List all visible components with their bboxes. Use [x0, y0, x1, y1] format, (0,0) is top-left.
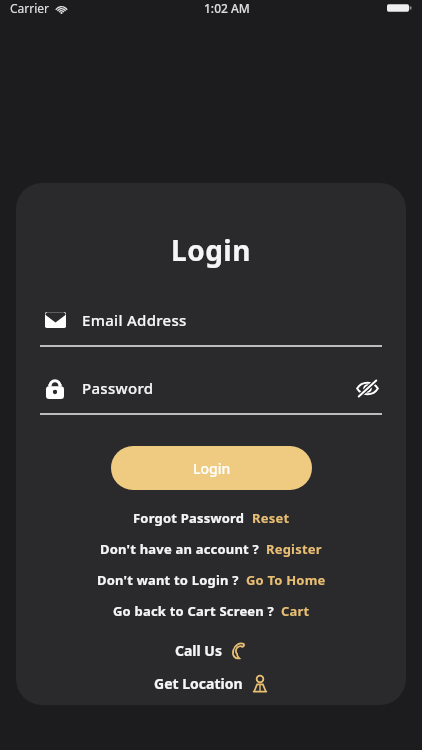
- staticText: 1:02 AM: [204, 0, 250, 16]
- button[interactable]: Password: [40, 371, 382, 415]
- staticText: Go To Home: [246, 571, 326, 589]
- button[interactable]: Go back to Cart Screen ?: [107, 600, 316, 622]
- staticText: Reset: [252, 509, 290, 527]
- button[interactable]: Don't have an account ?: [94, 538, 328, 560]
- staticText: Email Address: [82, 310, 187, 330]
- button[interactable]: Forgot Password: [127, 507, 296, 529]
- staticText: Don't have an account ?: [100, 540, 259, 558]
- staticText: Forgot Password: [133, 509, 245, 527]
- button[interactable]: Get Location: [148, 672, 274, 695]
- staticText: Go back to Cart Screen ?: [113, 602, 274, 620]
- staticText: Register: [266, 540, 322, 558]
- staticText: Password: [82, 378, 154, 398]
- button[interactable]: Login: [111, 446, 312, 490]
- staticText: Login: [171, 231, 251, 269]
- staticText: Get Location: [154, 674, 243, 693]
- staticText: Call Us: [175, 641, 222, 660]
- staticText: Carrier: [10, 0, 50, 16]
- button[interactable]: Email Address: [40, 303, 382, 347]
- staticText: Login: [193, 459, 231, 478]
- other: Call: [231, 642, 247, 659]
- button[interactable]: Toggle password visibility: [352, 373, 382, 403]
- staticText: Don't want to Login ?: [97, 571, 239, 589]
- button[interactable]: Don't want to Login ?: [91, 569, 332, 591]
- other: Get Location: [252, 675, 268, 693]
- staticText: Cart: [281, 602, 310, 620]
- button[interactable]: Call Us: [169, 639, 253, 662]
